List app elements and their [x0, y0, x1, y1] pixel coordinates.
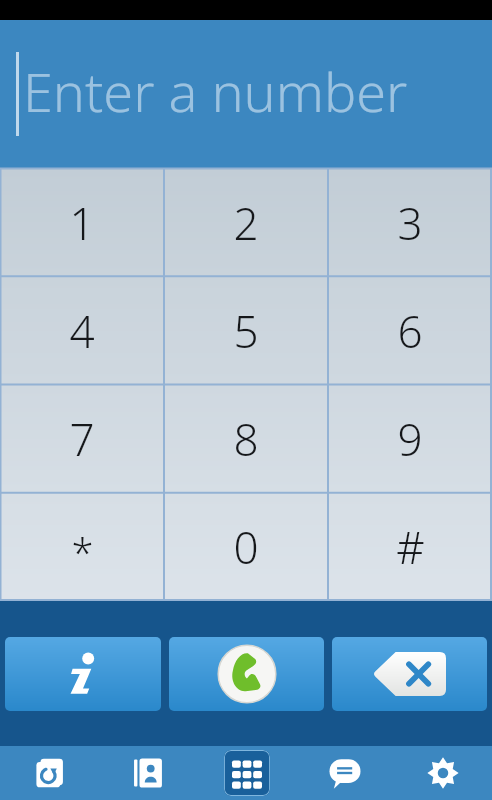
- staticText: 4: [69, 301, 95, 361]
- staticText: 8: [233, 409, 259, 469]
- staticText: 3: [397, 193, 423, 253]
- button[interactable]: 5: [164, 277, 328, 385]
- staticText: 7: [69, 409, 95, 469]
- button[interactable]: 8: [164, 385, 328, 493]
- button[interactable]: Recent calls: [0, 746, 99, 800]
- button[interactable]: #: [328, 493, 492, 601]
- staticText: #: [396, 517, 425, 577]
- staticText: 2: [233, 193, 259, 253]
- staticText: 5: [233, 301, 259, 361]
- button[interactable]: Messages: [296, 746, 394, 800]
- button[interactable]: Call: [169, 637, 324, 711]
- button[interactable]: Contacts: [99, 746, 198, 800]
- button[interactable]: *: [0, 493, 164, 601]
- button[interactable]: 2: [164, 168, 328, 277]
- button[interactable]: Enter a number: [0, 20, 492, 168]
- staticText: 1: [69, 193, 95, 253]
- button[interactable]: 0: [164, 493, 328, 601]
- staticText: 6: [397, 301, 423, 361]
- button[interactable]: Call info: [5, 637, 161, 711]
- staticText: *: [71, 525, 94, 579]
- staticText: Enter a number: [23, 54, 408, 128]
- button[interactable]: 4: [0, 277, 164, 385]
- button[interactable]: Keypad: [198, 746, 296, 800]
- staticText: 9: [397, 409, 423, 469]
- button[interactable]: 3: [328, 168, 492, 277]
- button[interactable]: 1: [0, 168, 164, 277]
- button[interactable]: 6: [328, 277, 492, 385]
- button[interactable]: 7: [0, 385, 164, 493]
- button[interactable]: Backspace: [332, 637, 487, 711]
- staticText: 0: [233, 517, 259, 577]
- button[interactable]: 9: [328, 385, 492, 493]
- button[interactable]: Settings: [394, 746, 492, 800]
